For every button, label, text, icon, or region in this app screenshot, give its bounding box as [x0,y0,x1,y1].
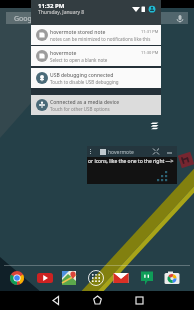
staticText: hovermote stored note [50,29,106,36]
button[interactable]: Connected as a media device [31,95,161,115]
button[interactable]: App [138,269,156,287]
button[interactable]: Home [89,292,106,309]
staticText: Touch to disable USB debugging [50,79,119,85]
button[interactable]: Google [6,12,188,24]
staticText: notes can be minimized to notifications … [50,36,151,42]
staticText: 11:32 PM [38,2,65,10]
button[interactable]: App [36,269,54,287]
staticText: Google [14,14,38,24]
button[interactable]: Notification stack [149,120,160,131]
button[interactable]: USB debugging connected [31,68,161,88]
button[interactable]: App [112,269,130,287]
button[interactable]: hovermote [178,152,194,168]
button[interactable]: Back [48,292,65,309]
staticText: hovermote [108,149,134,156]
staticText: 11:31 PM [141,29,159,34]
button[interactable]: App [163,269,181,287]
staticText: USB debugging connected [50,72,114,79]
staticText: Touch for other USB options [50,106,110,112]
staticText: Select to open a blank note [50,57,108,63]
button[interactable]: Recents [131,292,148,309]
staticText: hovermote [50,50,77,57]
staticText: Thursday, January 8 [38,9,85,16]
staticText: or icons, like the one to the right —> [88,158,174,165]
button[interactable]: App [87,269,105,287]
staticText: 11:30 PM [141,50,159,55]
button[interactable]: 11:31 PM [31,25,161,45]
button[interactable]: App [8,269,26,287]
button[interactable]: App [60,269,78,287]
button[interactable]: 11:30 PM [31,46,161,66]
staticText: Connected as a media device [50,99,120,106]
